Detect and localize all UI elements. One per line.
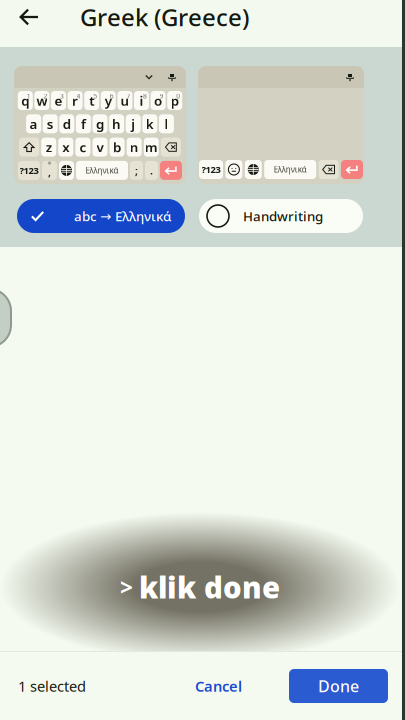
staticText: r	[72, 92, 78, 109]
staticText: 3	[60, 91, 64, 100]
staticText: l	[164, 115, 168, 133]
staticText: 1 selected	[18, 676, 86, 696]
staticText: Ελληνικά	[274, 164, 307, 175]
button[interactable]: Back	[11, 0, 47, 35]
button[interactable]: Handwriting	[199, 199, 363, 233]
staticText: ?123	[201, 163, 220, 176]
staticText: 4	[77, 91, 81, 100]
staticText: j	[131, 115, 135, 133]
staticText: g	[96, 115, 104, 133]
staticText: v	[96, 138, 103, 156]
staticText: 5	[93, 91, 97, 100]
button[interactable]: abc → Ελληνικά	[17, 199, 185, 233]
staticText: 0	[176, 91, 180, 100]
staticText: 6	[110, 91, 114, 100]
staticText: ;	[135, 163, 138, 177]
staticText: >	[120, 572, 133, 602]
staticText: q	[21, 92, 29, 109]
staticText: Cancel	[195, 676, 242, 696]
staticText: u	[120, 92, 129, 109]
staticText: 8	[143, 91, 147, 100]
staticText: w	[36, 92, 47, 109]
staticText: 2	[43, 91, 47, 100]
staticText: o	[154, 92, 162, 109]
staticText: s	[47, 115, 54, 133]
staticText: Ελληνικά	[85, 165, 118, 176]
staticText: n	[130, 138, 139, 156]
staticText: a	[30, 115, 38, 133]
staticText: .	[150, 163, 153, 177]
staticText: k	[146, 115, 154, 133]
staticText: ?123	[19, 164, 38, 177]
staticText: c	[79, 138, 86, 156]
staticText: f	[81, 115, 86, 133]
staticText: ,	[48, 165, 51, 179]
staticText: m	[145, 138, 158, 156]
staticText: 7	[126, 91, 130, 100]
staticText: Greek (Greece)	[80, 1, 249, 33]
staticText: h	[112, 115, 121, 133]
staticText: b	[113, 138, 121, 156]
staticText: klik done	[139, 567, 280, 606]
staticText: z	[46, 138, 52, 156]
button[interactable]: Done	[289, 669, 388, 703]
staticText: e	[54, 92, 62, 109]
staticText: abc → Ελληνικά	[74, 207, 171, 225]
staticText: p	[171, 92, 179, 109]
staticText: d	[63, 115, 71, 133]
staticText: 1	[27, 91, 31, 100]
staticText: Done	[318, 675, 359, 697]
staticText: i	[139, 92, 143, 109]
staticText: t	[89, 92, 94, 109]
staticText: 9	[160, 91, 164, 100]
staticText: y	[105, 92, 112, 109]
staticText: Handwriting	[243, 207, 323, 225]
staticText: x	[62, 138, 69, 156]
button[interactable]: Cancel	[181, 666, 256, 706]
